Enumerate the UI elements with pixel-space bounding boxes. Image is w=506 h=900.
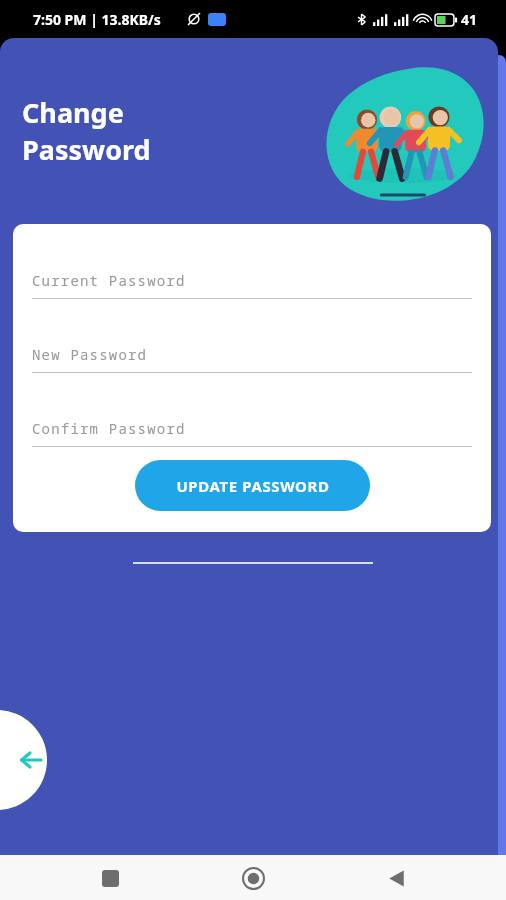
staticText: Change bbox=[22, 94, 124, 131]
button[interactable]: Home bbox=[233, 858, 273, 898]
staticText: 7:50 PM | 13.8KB/s bbox=[33, 10, 161, 29]
button[interactable]: Current Password bbox=[32, 271, 472, 299]
button[interactable]: New Password bbox=[32, 345, 472, 373]
staticText: 41 bbox=[461, 10, 478, 29]
button[interactable]: UPDATE PASSWORD bbox=[135, 460, 370, 511]
button[interactable]: Back bbox=[376, 858, 416, 898]
staticText: Password bbox=[22, 131, 151, 168]
button[interactable]: Confirm Password bbox=[32, 419, 472, 447]
staticText: Confirm Password bbox=[32, 419, 186, 438]
button[interactable]: Recents bbox=[90, 858, 130, 898]
staticText: New Password bbox=[32, 345, 148, 364]
staticText: Current Password bbox=[32, 271, 186, 290]
staticText: UPDATE PASSWORD bbox=[176, 476, 330, 496]
button[interactable]: Back bbox=[0, 710, 47, 810]
